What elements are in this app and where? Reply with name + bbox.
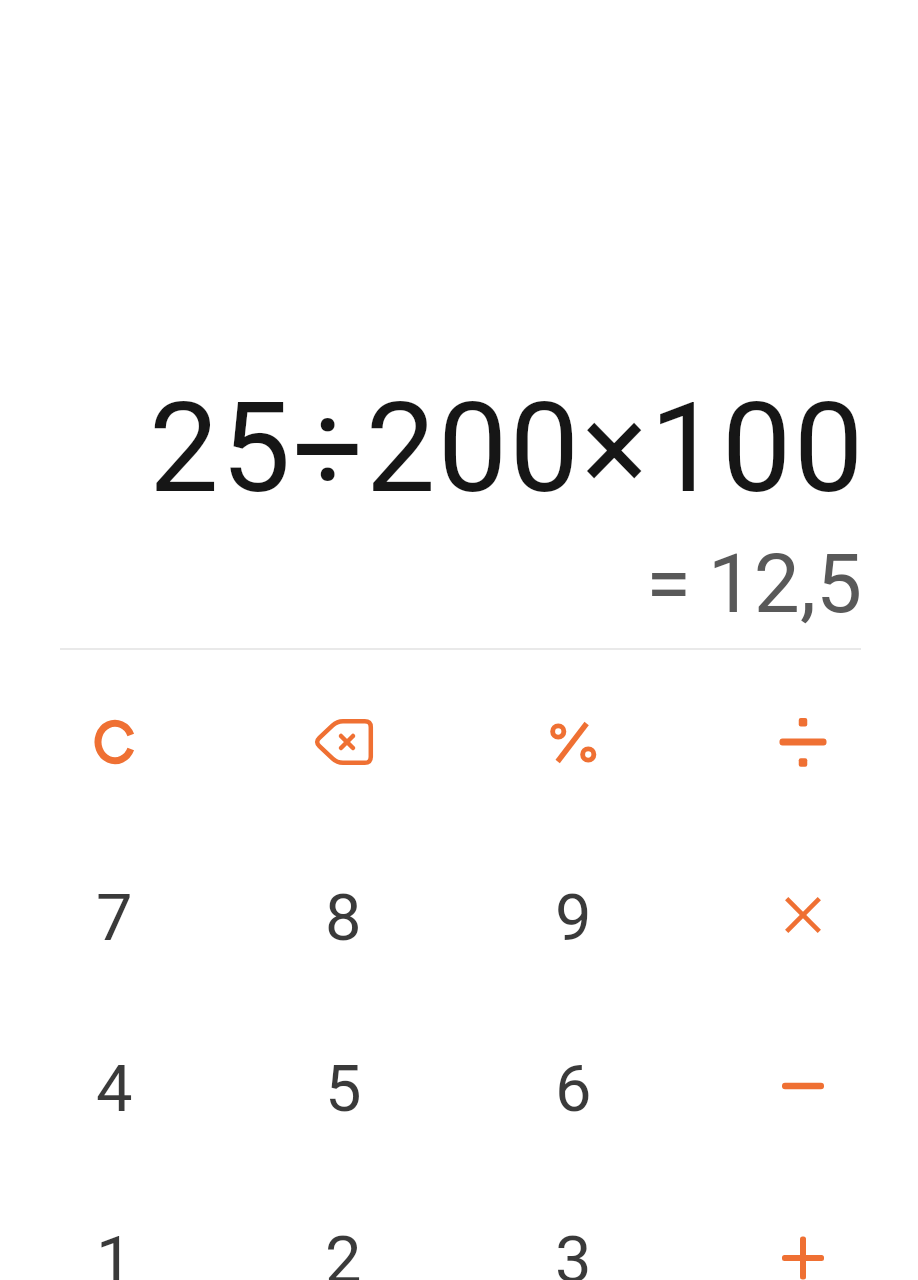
button[interactable]: 8 [229,831,458,1004]
button[interactable] [688,831,918,1004]
button[interactable] [688,1002,918,1175]
button[interactable] [688,1173,918,1280]
button[interactable]: 6 [458,1002,688,1175]
staticText: = 12,5 [646,536,863,632]
button[interactable]: 2 [229,1173,458,1280]
button[interactable] [458,655,688,828]
button[interactable] [0,655,229,828]
button[interactable] [688,655,918,828]
staticText: 6 [555,1051,592,1127]
button[interactable]: 5 [229,1002,458,1175]
button[interactable] [229,655,458,828]
button[interactable]: 7 [0,831,229,1004]
staticText: 4 [96,1051,133,1127]
button[interactable]: 1 [0,1173,229,1280]
staticText: 7 [96,880,133,956]
staticText: 25÷200×100 [149,376,866,521]
staticText: 3 [555,1222,592,1280]
staticText: 8 [325,880,362,956]
staticText: 9 [555,880,592,956]
button[interactable]: 9 [458,831,688,1004]
staticText: 2 [325,1222,362,1280]
button[interactable]: 3 [458,1173,688,1280]
staticText: 1 [96,1222,133,1280]
staticText: 5 [325,1051,362,1127]
button[interactable]: 4 [0,1002,229,1175]
